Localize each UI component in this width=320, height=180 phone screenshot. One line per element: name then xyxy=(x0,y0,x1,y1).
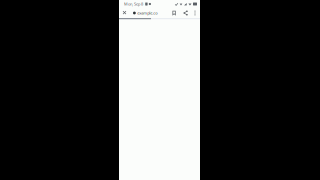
button[interactable]: Share xyxy=(182,8,189,18)
staticText: Mon, Sep 8 xyxy=(124,1,144,7)
button[interactable]: Bookmark xyxy=(170,8,177,18)
staticText: example.co xyxy=(137,10,157,16)
button[interactable]: example.co xyxy=(133,8,157,18)
button[interactable]: More options xyxy=(193,8,196,18)
button[interactable]: Close xyxy=(121,8,128,18)
